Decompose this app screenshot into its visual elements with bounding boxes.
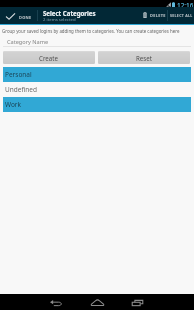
staticText: SELECT ALL — [170, 13, 193, 18]
button[interactable]: DONE — [0, 7, 37, 24]
button[interactable]: SELECT ALL — [168, 7, 194, 24]
button[interactable]: Personal — [3, 67, 191, 82]
staticText: Work — [5, 100, 22, 109]
staticText: DELETE — [150, 13, 166, 18]
button[interactable]: Back — [36, 295, 76, 310]
button[interactable]: Undefined — [3, 82, 191, 97]
button[interactable]: Reset — [98, 51, 190, 64]
button[interactable]: DELETE — [138, 7, 166, 24]
staticText: Select Categories — [43, 9, 96, 17]
button[interactable]: Work — [3, 97, 191, 112]
button[interactable]: Home — [77, 295, 117, 310]
staticText: Group your saved logins by adding them t… — [2, 28, 180, 34]
staticText: Reset — [136, 54, 153, 62]
staticText: Category Name — [7, 38, 49, 46]
staticText: Personal — [5, 70, 32, 79]
button[interactable]: Create — [3, 51, 95, 64]
staticText: Create — [39, 54, 59, 62]
staticText: 2 items selected — [43, 16, 76, 22]
staticText: 12:16 — [177, 1, 194, 8]
staticText: DONE — [19, 15, 32, 20]
button[interactable]: Recent apps — [117, 295, 157, 310]
staticText: Undefined — [5, 85, 38, 94]
